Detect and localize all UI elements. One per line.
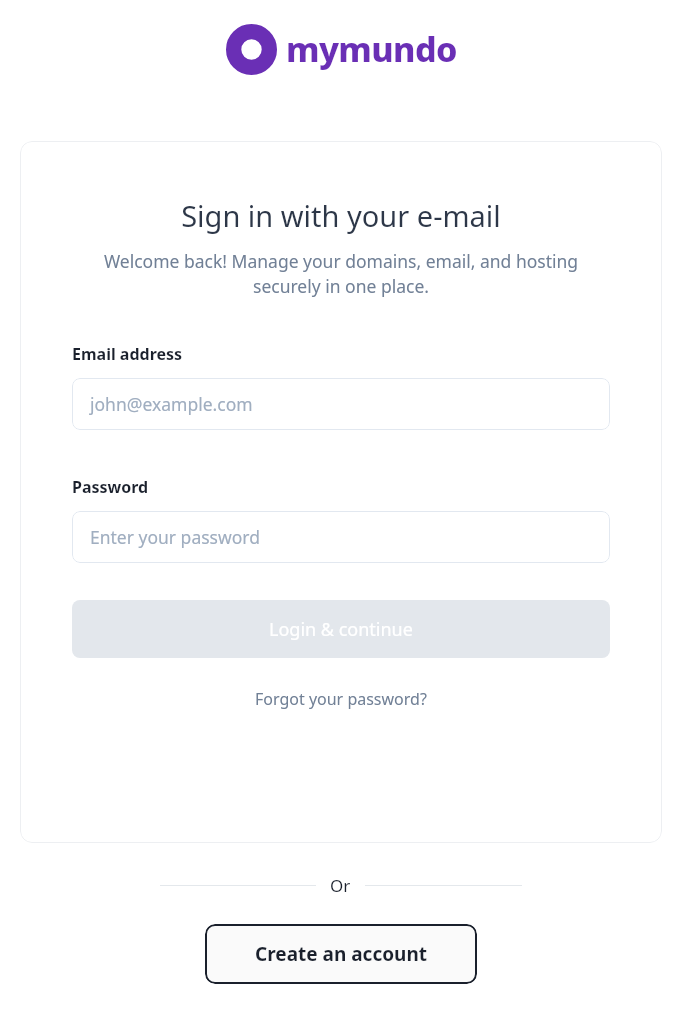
staticText: Password <box>72 476 149 498</box>
staticText: Sign in with your e-mail <box>181 196 501 235</box>
staticText: Create an account <box>255 941 428 967</box>
button[interactable]: Forgot your password? <box>249 684 433 714</box>
button[interactable]: Login & continue <box>72 600 610 658</box>
button[interactable]: Create an account <box>205 924 477 984</box>
staticText: Enter your password <box>90 525 260 549</box>
staticText: john@example.com <box>90 392 253 416</box>
staticText: Welcome back! Manage your domains, email… <box>72 249 610 298</box>
staticText: Forgot your password? <box>255 688 427 710</box>
staticText: Email address <box>72 343 183 365</box>
button[interactable]: Enter your password <box>72 511 610 563</box>
button[interactable]: john@example.com <box>72 378 610 430</box>
staticText: Login & continue <box>269 617 413 642</box>
button[interactable]: mymundo logo <box>226 22 457 76</box>
staticText: Or <box>330 874 351 897</box>
staticText: mymundo <box>286 26 457 72</box>
